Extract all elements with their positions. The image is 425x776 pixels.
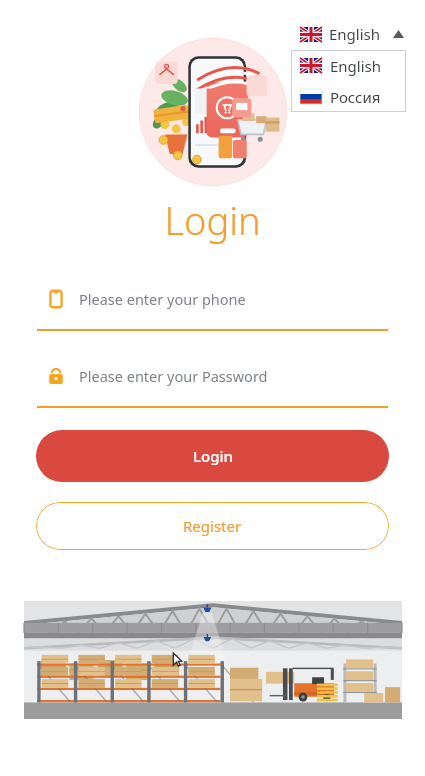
staticText: Register (183, 516, 242, 536)
other: Collapse language menu (393, 30, 404, 38)
button[interactable]: Россия (291, 81, 406, 112)
staticText: Please enter your Password (79, 366, 268, 386)
staticText: Россия (330, 87, 381, 107)
button[interactable]: Register (36, 502, 389, 550)
staticText: English (329, 24, 381, 44)
staticText: Login (0, 194, 425, 246)
button[interactable]: English (291, 50, 406, 81)
staticText: English (330, 56, 382, 76)
button[interactable]: Please enter your Password (37, 361, 388, 408)
button[interactable]: Login (36, 430, 389, 482)
staticText: Please enter your phone (79, 289, 246, 309)
staticText: Login (193, 446, 233, 466)
button[interactable]: English (298, 22, 406, 46)
button[interactable]: Please enter your phone (37, 284, 388, 331)
